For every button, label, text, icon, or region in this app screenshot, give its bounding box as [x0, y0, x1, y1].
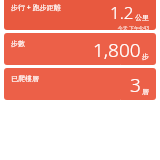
- staticText: 層: [142, 87, 149, 96]
- staticText: 今天 下午4:43: [117, 64, 149, 65]
- staticText: 步: [142, 52, 149, 61]
- button[interactable]: 步行 + 跑步距離: [4, 0, 156, 30]
- staticText: 今天 下午4:42: [117, 99, 149, 100]
- staticText: 今天 下午4:43: [117, 25, 149, 30]
- staticText: 公里: [135, 13, 149, 22]
- staticText: 1,800: [93, 37, 141, 63]
- staticText: 1.2: [110, 1, 134, 24]
- staticText: 步行 + 跑步距離: [11, 3, 61, 13]
- button[interactable]: 步數: [4, 33, 156, 65]
- staticText: 已爬樓層: [11, 74, 39, 83]
- staticText: 3: [130, 72, 141, 98]
- button[interactable]: 已爬樓層: [4, 68, 156, 100]
- staticText: 步數: [11, 39, 25, 48]
